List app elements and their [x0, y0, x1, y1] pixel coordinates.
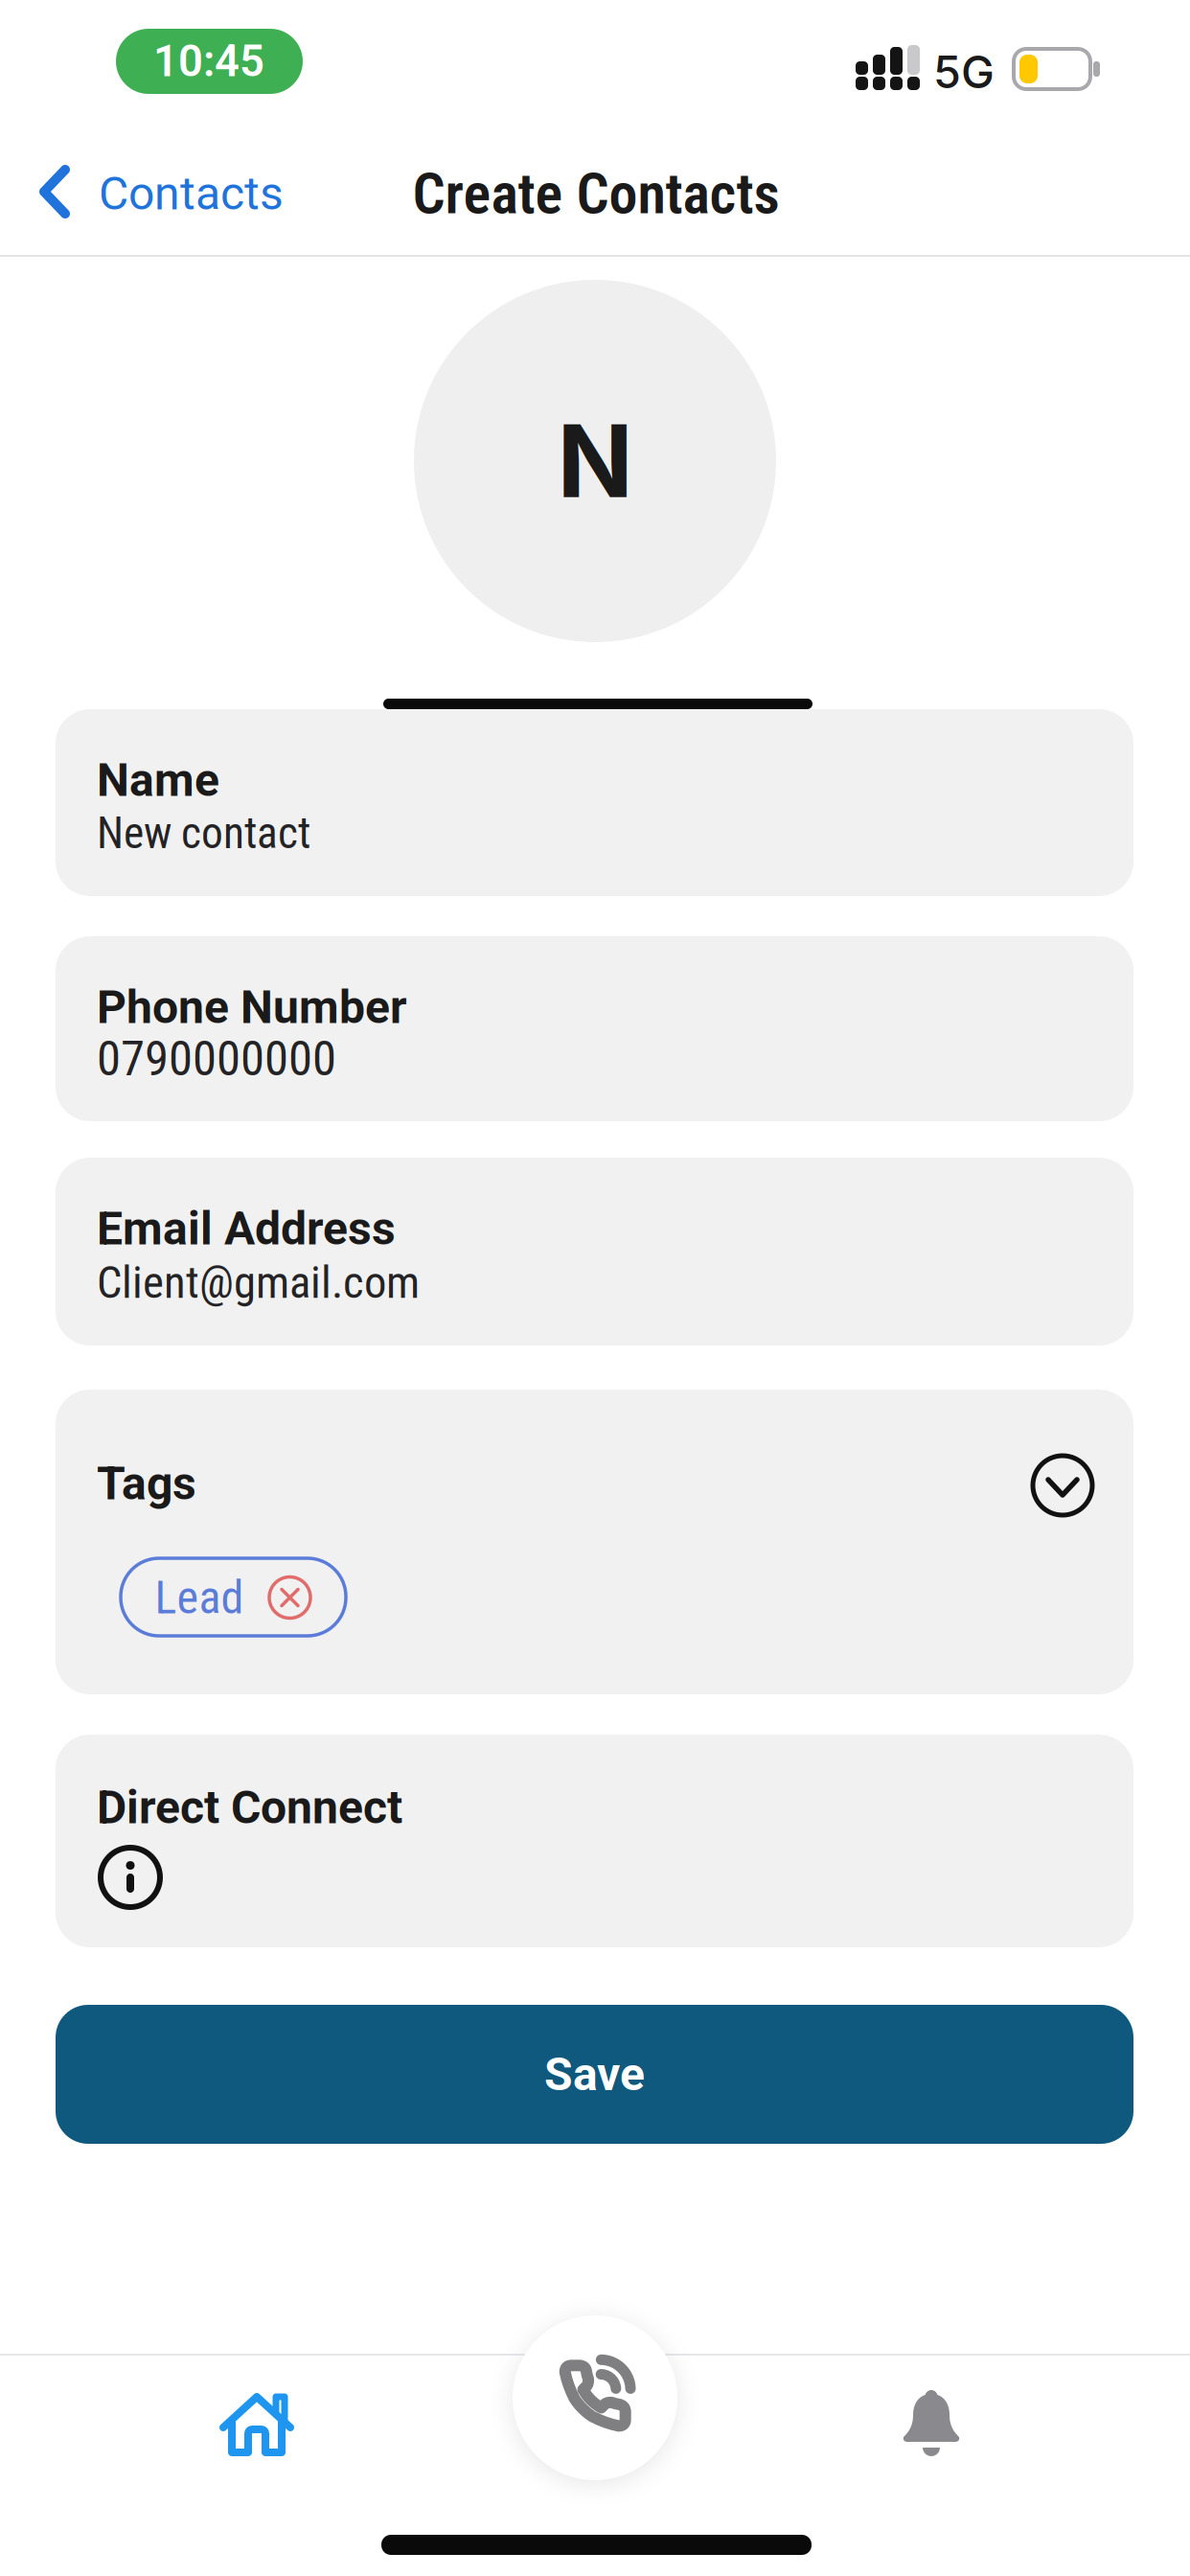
staticText: 5G: [933, 46, 995, 98]
button[interactable]: Add photo: [414, 280, 776, 642]
staticText: Tags: [97, 1457, 196, 1511]
staticText: Lead: [155, 1571, 244, 1624]
staticText: 0790000000: [97, 1030, 336, 1087]
staticText: 10:45: [153, 36, 264, 87]
button[interactable]: Expand tags: [1033, 1456, 1092, 1515]
button[interactable]: Save: [56, 2005, 1133, 2144]
button[interactable]: Email Address: [56, 1158, 1133, 1345]
staticText: Create Contacts: [412, 160, 779, 227]
button[interactable]: Name: [56, 709, 1133, 896]
button[interactable]: More information: [101, 1848, 160, 1907]
staticText: New contact: [97, 808, 310, 859]
button[interactable]: Contacts: [36, 159, 287, 224]
staticText: Client@gmail.com: [97, 1256, 420, 1309]
staticText: Email Address: [97, 1202, 396, 1256]
staticText: Name: [97, 753, 219, 807]
staticText: Phone Number: [97, 980, 407, 1034]
staticText: N: [557, 402, 633, 520]
button[interactable]: Remove tag Lead: [121, 1558, 346, 1636]
staticText: Save: [544, 2047, 645, 2101]
staticText: Contacts: [99, 167, 284, 221]
button[interactable]: Notifications: [901, 2390, 962, 2457]
button[interactable]: Calls: [513, 2315, 677, 2480]
staticText: Direct Connect: [97, 1781, 402, 1834]
button[interactable]: Phone Number: [56, 936, 1133, 1121]
button[interactable]: Home: [218, 2385, 295, 2462]
